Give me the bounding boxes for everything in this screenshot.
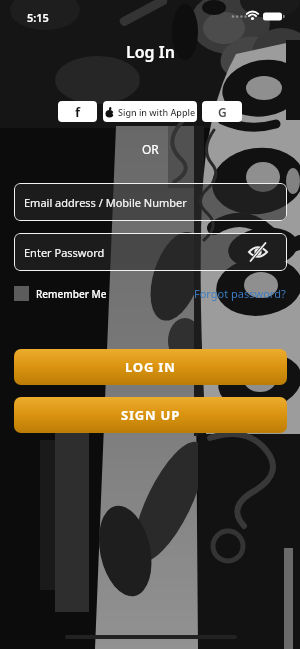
staticText: Enter Password: [24, 245, 105, 260]
button[interactable]: Enter Password: [14, 233, 287, 271]
staticText: Remember Me: [36, 287, 107, 301]
staticText: Sign in with Apple: [118, 106, 196, 118]
button[interactable]: Email address / Mobile Number: [14, 183, 287, 221]
button[interactable]: G: [202, 101, 242, 122]
staticText: Forgot password?: [194, 286, 286, 301]
button[interactable]: Forgot password?: [194, 286, 286, 301]
staticText: 5:15: [27, 10, 49, 25]
staticText: Log In: [126, 41, 175, 63]
button[interactable]: SIGN UP: [14, 397, 287, 433]
button[interactable]: Remember Me: [14, 286, 107, 301]
staticText: LOG IN: [125, 358, 176, 376]
staticText: f: [75, 103, 81, 121]
button[interactable]: f: [58, 101, 97, 122]
staticText: G: [218, 104, 227, 120]
staticText: Email address / Mobile Number: [24, 195, 187, 210]
staticText: OR: [142, 141, 159, 157]
staticText: SIGN UP: [121, 406, 181, 424]
button[interactable]: LOG IN: [14, 349, 287, 385]
button[interactable]: Sign in with Apple: [103, 101, 197, 122]
